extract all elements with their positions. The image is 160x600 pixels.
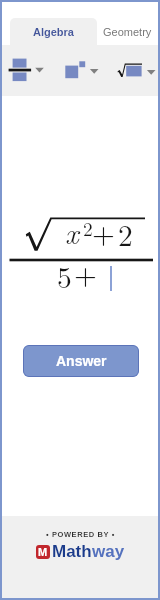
button[interactable]: Geometry (97, 18, 158, 45)
staticText: way (92, 542, 125, 561)
button[interactable]: Square root (108, 45, 158, 96)
staticText: + (92, 211, 115, 253)
button[interactable]: Answer (23, 345, 139, 377)
button[interactable]: Fraction (2, 45, 55, 96)
button[interactable]: Algebra (10, 18, 97, 45)
staticText: 2 (118, 213, 133, 255)
button[interactable]: Exponent (55, 45, 108, 96)
staticText: Algebra (33, 26, 74, 38)
staticText: 5 (57, 255, 72, 297)
staticText: Answer (56, 353, 107, 369)
staticText: Geometry (103, 26, 152, 38)
staticText: + (74, 252, 97, 294)
staticText: 2 (83, 214, 93, 242)
staticText: x (65, 211, 79, 253)
staticText: • POWERED BY • (46, 530, 115, 538)
staticText: M (38, 546, 48, 558)
staticText: Math (52, 542, 92, 561)
